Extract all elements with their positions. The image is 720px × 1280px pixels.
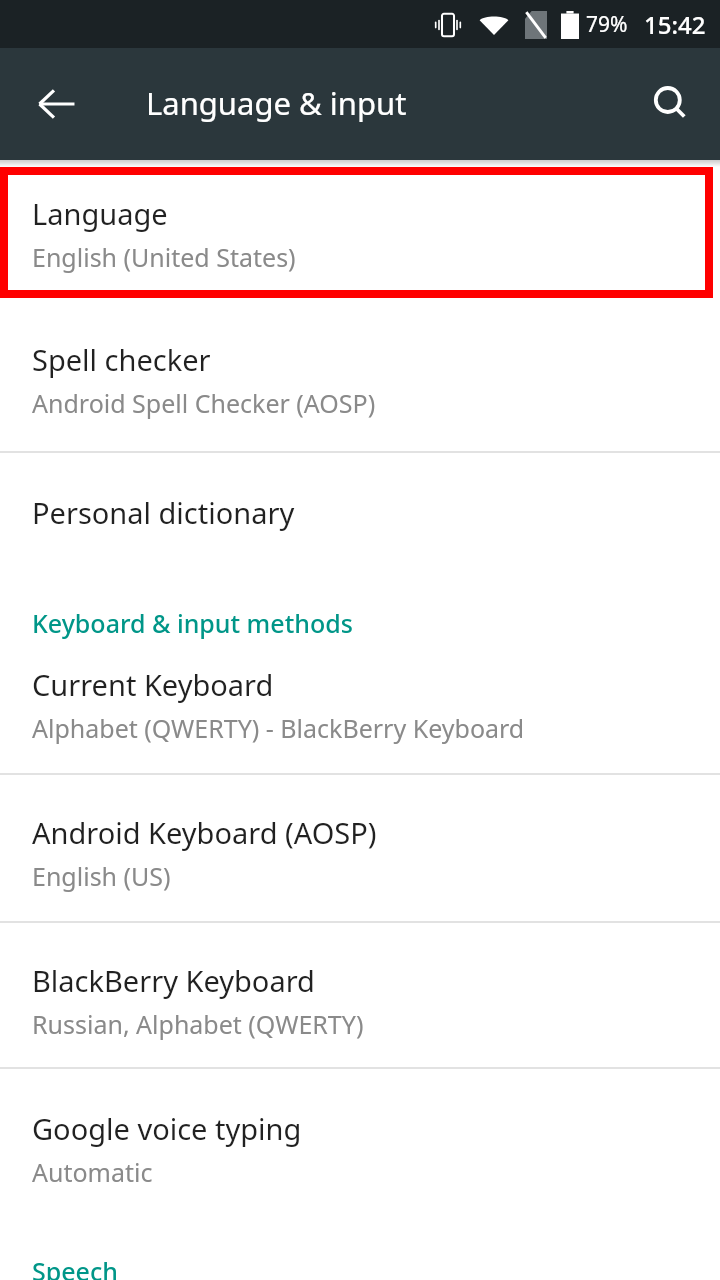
staticText: Current Keyboard: [32, 665, 274, 704]
button[interactable]: Android Keyboard (AOSP): [0, 775, 720, 921]
staticText: BlackBerry Keyboard: [32, 961, 315, 1000]
staticText: Russian, Alphabet (QWERTY): [32, 1007, 364, 1041]
staticText: Language & input: [146, 82, 407, 124]
staticText: English (United States): [32, 240, 296, 274]
button[interactable]: Spell checker: [0, 298, 720, 451]
staticText: 79%: [586, 10, 628, 39]
staticText: Speech: [32, 1254, 118, 1280]
staticText: Google voice typing: [32, 1109, 302, 1148]
button[interactable]: BlackBerry Keyboard: [0, 923, 720, 1067]
staticText: English (US): [32, 859, 171, 893]
staticText: Automatic: [32, 1155, 153, 1189]
staticText: Keyboard & input methods: [32, 606, 353, 640]
staticText: Android Spell Checker (AOSP): [32, 386, 376, 420]
button[interactable]: Search: [638, 71, 704, 137]
button[interactable]: Language: [0, 167, 720, 298]
staticText: Personal dictionary: [32, 493, 295, 532]
staticText: Alphabet (QWERTY) - BlackBerry Keyboard: [32, 711, 525, 745]
button[interactable]: Google voice typing: [0, 1069, 720, 1214]
button[interactable]: Back: [24, 71, 90, 137]
staticText: 15:42: [644, 8, 706, 41]
staticText: Spell checker: [32, 340, 211, 379]
staticText: Android Keyboard (AOSP): [32, 813, 377, 852]
button[interactable]: Current Keyboard: [0, 640, 720, 773]
staticText: Language: [32, 194, 168, 233]
button[interactable]: Personal dictionary: [0, 453, 720, 561]
